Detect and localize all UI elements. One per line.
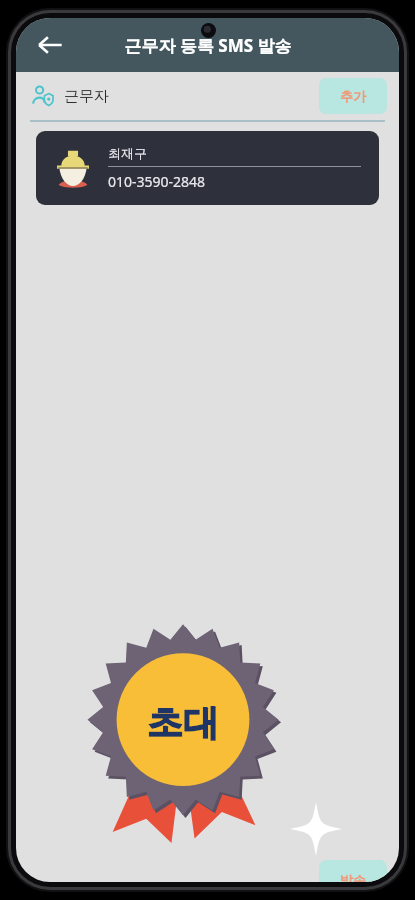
staticText: 근무자 등록 SMS 발송: [124, 34, 292, 57]
button[interactable]: 최재구: [36, 131, 379, 205]
staticText: 발송: [340, 872, 366, 882]
button[interactable]: Back: [30, 25, 70, 65]
staticText: 근무자: [64, 87, 109, 106]
button[interactable]: 추가: [319, 78, 387, 114]
button[interactable]: 발송: [319, 860, 387, 882]
staticText: 초대: [147, 700, 219, 745]
staticText: 010-3590-2848: [108, 172, 206, 191]
staticText: 최재구: [108, 145, 147, 161]
staticText: 추가: [340, 88, 366, 104]
